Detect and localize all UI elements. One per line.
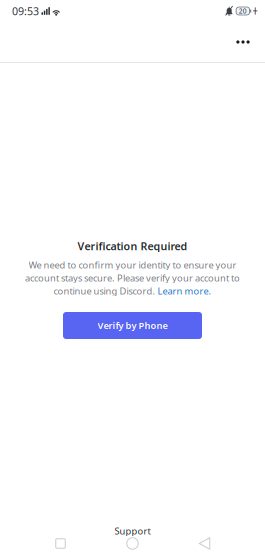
- button[interactable]: Verify by Phone: [63, 312, 202, 339]
- button[interactable]: Recent apps: [24, 537, 96, 550]
- button[interactable]: Back: [168, 537, 240, 550]
- staticText: Learn more.: [157, 285, 211, 297]
- staticText: Support: [114, 525, 150, 537]
- staticText: 09:53: [12, 4, 39, 18]
- button[interactable]: Home: [96, 537, 168, 550]
- button[interactable]: Support: [104, 526, 160, 536]
- staticText: Verification Required: [77, 239, 187, 253]
- staticText: account stays secure. Please verify your…: [25, 272, 240, 284]
- button[interactable]: Learn more.: [157, 285, 211, 297]
- staticText: 20: [239, 7, 247, 15]
- staticText: continue using Discord.: [53, 285, 157, 297]
- staticText: We need to confirm your identity to ensu…: [28, 259, 236, 271]
- button[interactable]: More options: [226, 23, 260, 61]
- staticText: Verify by Phone: [97, 319, 167, 332]
